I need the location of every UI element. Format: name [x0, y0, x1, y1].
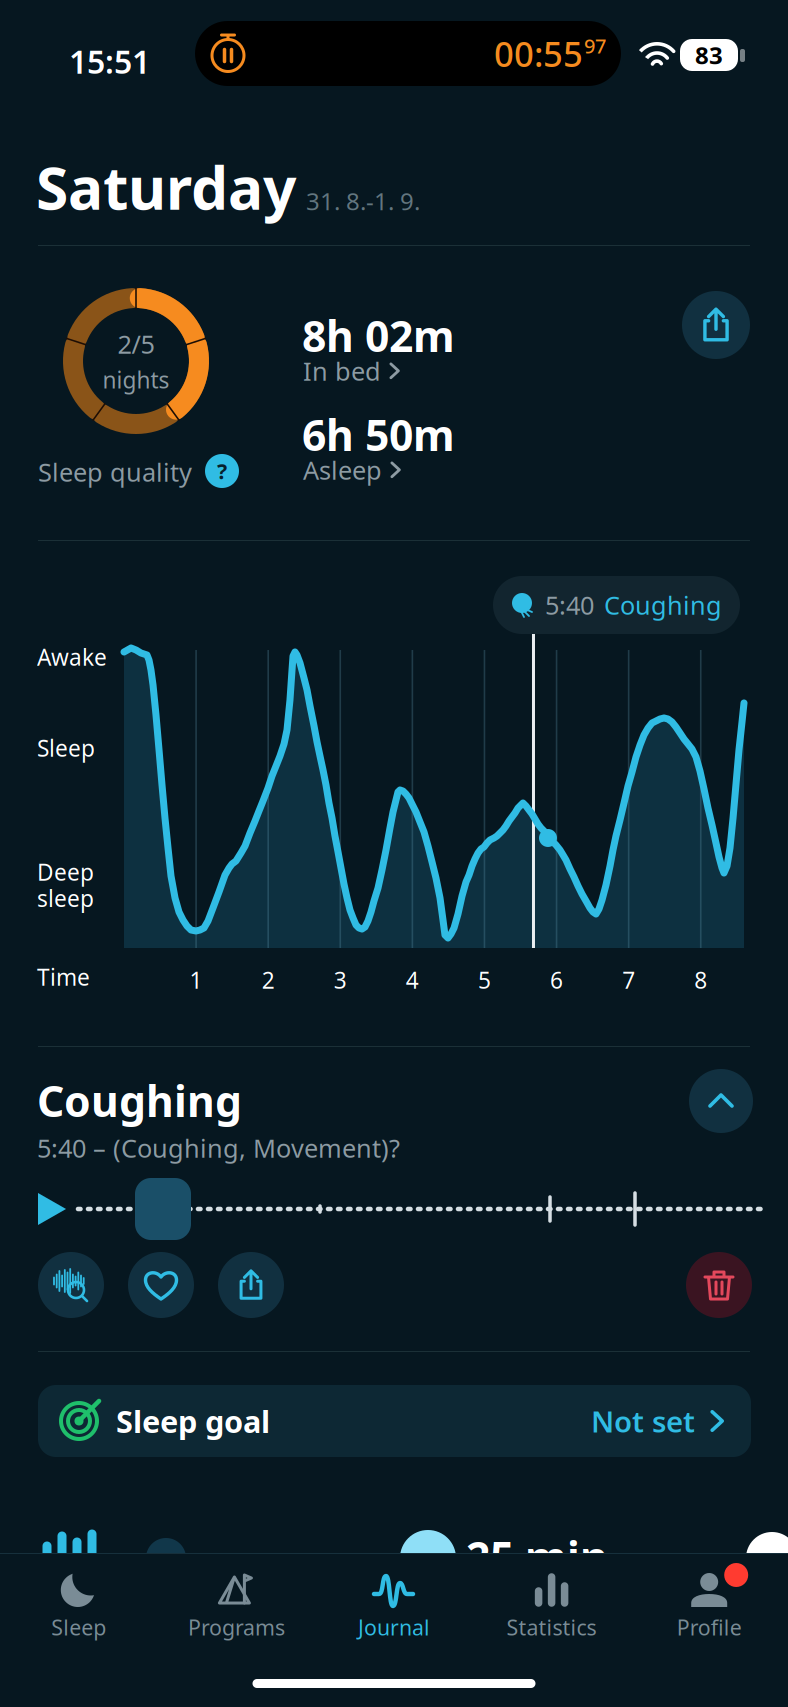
staticText: 5 — [478, 965, 491, 995]
button[interactable]: Sleep — [0, 1569, 158, 1641]
staticText: 31. 8.-1. 9. — [306, 185, 420, 217]
staticText: 6h 50m — [302, 406, 455, 463]
staticText: 3 — [334, 965, 347, 995]
staticText: nights — [102, 365, 169, 395]
button[interactable]: Play — [38, 1193, 66, 1225]
staticText: Sleep — [37, 733, 95, 763]
staticText: 15:51 — [69, 40, 150, 82]
button[interactable]: Sleep goal — [38, 1385, 751, 1457]
staticText: Saturday — [36, 148, 296, 226]
staticText: Statistics — [507, 1613, 597, 1641]
staticText: 4 — [406, 965, 419, 995]
staticText: 00:55 — [494, 30, 583, 76]
staticText: Asleep — [303, 453, 382, 487]
staticText: 5:40 – (Coughing, Movement)? — [37, 1131, 400, 1165]
staticText: Sleep goal — [116, 1401, 270, 1441]
staticText: Awake — [37, 642, 107, 672]
staticText: 2/5 — [117, 327, 154, 361]
staticText: Sleep — [51, 1613, 106, 1641]
staticText: Profile — [677, 1613, 742, 1641]
staticText: 1 — [190, 965, 203, 995]
staticText: ? — [217, 457, 227, 485]
staticText: Sleep quality — [38, 455, 192, 489]
button[interactable]: Share — [682, 291, 750, 359]
button[interactable]: Delete — [686, 1252, 752, 1318]
staticText: Time — [37, 962, 90, 992]
button[interactable]: Favorite — [128, 1252, 194, 1318]
staticText: 2 — [262, 965, 275, 995]
button[interactable]: Sound analysis — [38, 1252, 104, 1318]
staticText: sleep — [37, 883, 94, 913]
staticText: 7 — [622, 965, 635, 995]
staticText: 5:40 — [545, 588, 594, 622]
staticText: In bed — [303, 354, 381, 388]
staticText: 83 — [695, 39, 723, 71]
staticText: 6 — [550, 965, 563, 995]
button[interactable]: Profile — [630, 1569, 788, 1641]
button[interactable]: Journal — [315, 1569, 473, 1641]
staticText: 25 min — [466, 1528, 608, 1585]
staticText: Deep — [37, 857, 94, 887]
staticText: Programs — [188, 1613, 285, 1641]
button[interactable]: Statistics — [473, 1569, 630, 1641]
button[interactable]: Sleep quality info — [205, 454, 239, 488]
staticText: Coughing — [604, 588, 722, 622]
staticText: 8 — [694, 965, 707, 995]
button[interactable]: Collapse — [689, 1069, 753, 1133]
staticText: Journal — [358, 1613, 430, 1641]
staticText: 97 — [584, 32, 606, 59]
button[interactable]: Share recording — [218, 1252, 284, 1318]
staticText: Coughing — [37, 1072, 242, 1129]
button[interactable]: Programs — [158, 1569, 315, 1641]
staticText: Not set — [591, 1401, 695, 1440]
staticText: 8h 02m — [302, 307, 455, 364]
